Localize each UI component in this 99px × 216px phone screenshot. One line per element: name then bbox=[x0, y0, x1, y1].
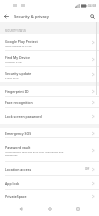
staticText: Automatically save and fill in your user… bbox=[5, 150, 75, 156]
button[interactable]: Location access bbox=[0, 162, 99, 176]
staticText: Off bbox=[85, 167, 90, 171]
button[interactable]: Lock screen password bbox=[0, 108, 99, 124]
staticText: Emergency SOS bbox=[5, 131, 32, 136]
button[interactable]: Recents bbox=[71, 202, 85, 216]
button[interactable]: Find My Device bbox=[0, 51, 99, 67]
staticText: Security update bbox=[5, 71, 32, 76]
staticText: Security & privacy bbox=[14, 14, 49, 20]
staticText: SECURITY STATUS bbox=[5, 29, 27, 32]
staticText: App lock bbox=[5, 181, 20, 186]
button[interactable]: Face recognition bbox=[0, 97, 99, 108]
staticText: Apps scanned at 01:38 bbox=[5, 44, 32, 47]
staticText: Find My Device bbox=[5, 55, 31, 60]
button[interactable]: Fingerprint ID bbox=[0, 86, 99, 97]
staticText: Location is off bbox=[5, 60, 22, 63]
staticText: Google Play Protect bbox=[5, 39, 38, 44]
staticText: Fingerprint ID bbox=[5, 89, 29, 94]
button[interactable]: Back bbox=[0, 11, 12, 22]
button[interactable]: Back bbox=[14, 202, 28, 216]
staticText: Lock screen password bbox=[5, 114, 42, 119]
button[interactable]: Home bbox=[43, 202, 57, 216]
staticText: 5 May 2019 bbox=[5, 76, 19, 79]
staticText: Password vault bbox=[5, 145, 31, 150]
staticText: Location access bbox=[5, 167, 32, 172]
button[interactable]: PrivateSpace bbox=[0, 190, 99, 202]
button[interactable]: Security update bbox=[0, 67, 99, 82]
button[interactable]: Google Play Protect bbox=[0, 34, 99, 51]
button[interactable]: Search bbox=[85, 11, 99, 22]
button[interactable]: Emergency SOS bbox=[0, 128, 99, 138]
button[interactable]: App lock bbox=[0, 176, 99, 190]
staticText: PrivateSpace bbox=[5, 194, 27, 199]
button[interactable]: Password vault bbox=[0, 138, 99, 162]
staticText: Face recognition bbox=[5, 100, 33, 105]
staticText: 04:58 bbox=[88, 4, 97, 8]
